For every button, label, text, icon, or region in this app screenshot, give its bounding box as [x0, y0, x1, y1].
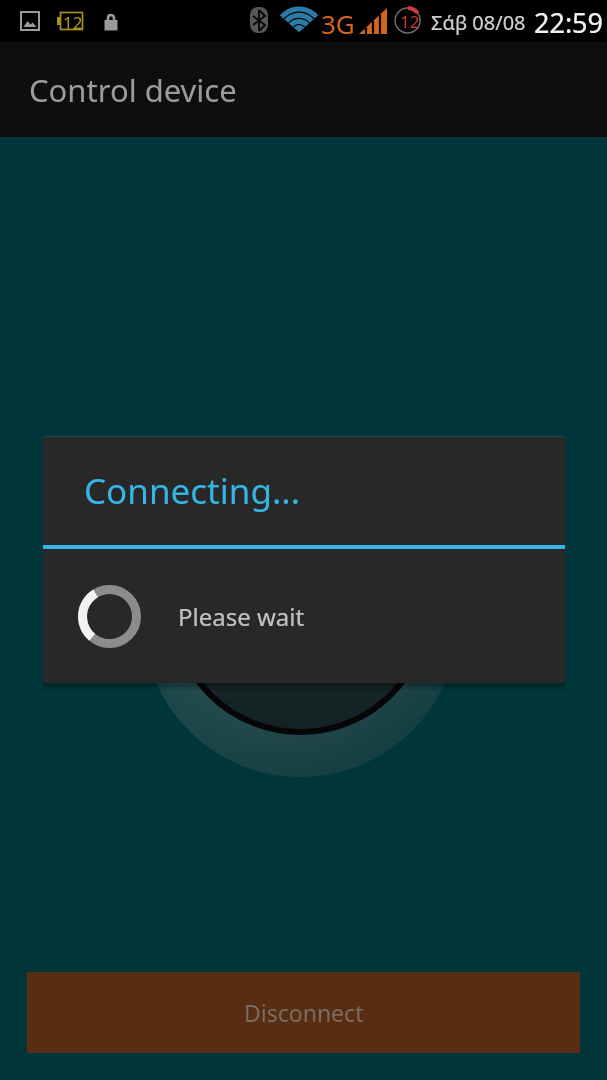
staticText: Σάβ 08/08	[431, 9, 526, 36]
other: Status bar	[0, 0, 607, 42]
staticText: 12	[400, 10, 420, 33]
staticText: 12	[63, 11, 83, 34]
staticText: Please wait	[178, 600, 305, 633]
staticText: 3G	[321, 6, 355, 41]
staticText: 22:59	[534, 4, 604, 41]
other: Loading	[78, 585, 141, 648]
staticText: Connecting...	[84, 467, 301, 515]
button[interactable]: Disconnect	[27, 972, 580, 1053]
staticText: Control device	[29, 69, 237, 111]
staticText: Disconnect	[244, 997, 364, 1028]
